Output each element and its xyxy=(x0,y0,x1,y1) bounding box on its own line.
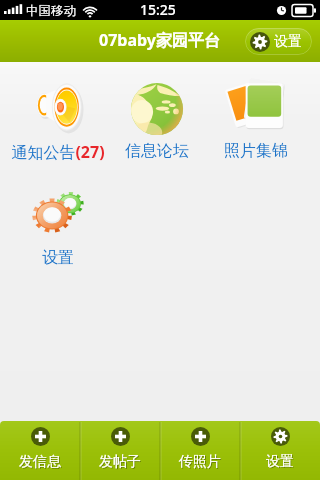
button[interactable]: 传照片 xyxy=(160,421,240,480)
staticText: 通知公告(27) xyxy=(11,141,105,163)
staticText: 发信息 xyxy=(19,453,61,471)
staticText: 07baby家园平台 xyxy=(99,29,220,51)
staticText: 信息论坛 xyxy=(125,141,189,161)
button[interactable]: 信息论坛 xyxy=(107,78,206,161)
staticText: 传照片 xyxy=(180,454,222,472)
staticText: 中国移动 xyxy=(26,3,76,19)
staticText: 发帖子 xyxy=(99,453,141,471)
staticText: 设置 xyxy=(42,248,74,268)
staticText: 发帖子 xyxy=(100,454,142,472)
button[interactable]: 发信息 xyxy=(0,421,80,480)
staticText: 传照片 xyxy=(179,453,221,471)
button[interactable]: 发帖子 xyxy=(80,421,160,480)
button[interactable]: 设置 xyxy=(245,28,312,55)
button[interactable]: 通知公告(27) xyxy=(9,78,107,163)
staticText: 设置 xyxy=(266,453,294,471)
button[interactable]: 设置 xyxy=(9,185,107,268)
staticText: 发信息 xyxy=(20,454,62,472)
button[interactable]: 设置 xyxy=(240,421,320,480)
staticText: 设置 xyxy=(274,33,302,51)
staticText: 15:25 xyxy=(140,0,176,19)
button[interactable]: 照片集锦 xyxy=(206,78,305,161)
staticText: 设置 xyxy=(267,454,295,472)
staticText: 照片集锦 xyxy=(224,141,288,161)
